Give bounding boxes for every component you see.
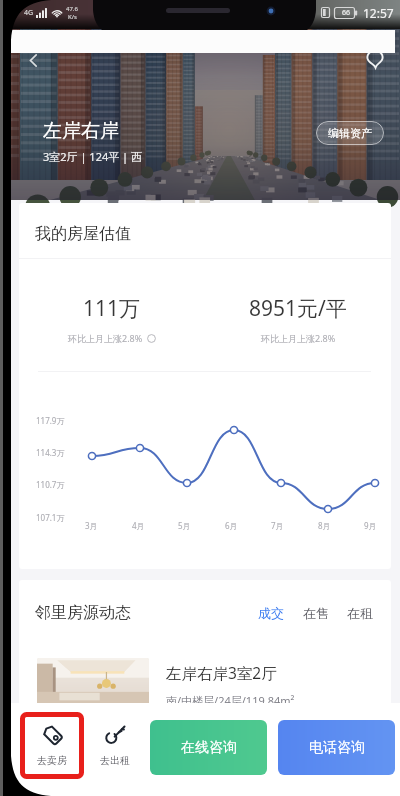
staticText: 107.1万 — [36, 512, 65, 523]
staticText: 电话咨询 — [309, 739, 365, 757]
staticText: 4月 — [132, 520, 145, 531]
staticText: 环比上月上涨2.8% — [68, 332, 143, 344]
button[interactable]: 客服 — [360, 44, 390, 74]
button[interactable]: 电话咨询 — [278, 720, 395, 775]
staticText: 环比上月上涨2.8% — [261, 332, 336, 344]
staticText: 我的房屋估值 — [35, 224, 131, 244]
staticText: 5月 — [178, 520, 191, 531]
button[interactable]: 在线咨询 — [150, 720, 267, 775]
staticText: 左岸右岸 — [43, 119, 119, 143]
staticText: 8月 — [318, 520, 331, 531]
button[interactable]: 编辑资产 — [316, 121, 384, 145]
staticText: 8951元/平 — [249, 294, 347, 323]
staticText: 117.9万 — [36, 415, 65, 426]
staticText: 9月 — [364, 520, 377, 531]
staticText: 成交 — [258, 605, 284, 621]
staticText: 在线咨询 — [181, 739, 237, 757]
staticText: 左岸右岸3室2厅 — [166, 662, 277, 683]
button[interactable]: 在售 — [300, 601, 332, 625]
staticText: 邻里房源动态 — [35, 603, 131, 623]
staticText: 在租 — [347, 605, 373, 621]
staticText: 12:57 — [363, 5, 394, 21]
button[interactable]: 去卖房 — [20, 712, 84, 779]
staticText: K/s — [68, 13, 77, 21]
staticText: 7月 — [271, 520, 284, 531]
staticText: 4G — [24, 8, 34, 18]
button[interactable]: 返回 — [17, 44, 49, 76]
button[interactable]: 去出租 — [84, 712, 146, 779]
staticText: 3室2厅 | 124平 | 西 — [43, 149, 143, 164]
staticText: 3月 — [85, 520, 98, 531]
staticText: 66 — [342, 8, 351, 18]
staticText: 6月 — [225, 520, 238, 531]
staticText: 去出租 — [100, 754, 130, 767]
button[interactable]: 在租 — [344, 601, 376, 625]
staticText: 47.6 — [66, 5, 78, 13]
staticText: 编辑资产 — [328, 126, 372, 140]
staticText: 去卖房 — [37, 754, 67, 767]
button[interactable]: 左岸右岸3室2厅 — [19, 580, 391, 705]
staticText: 114.3万 — [36, 447, 65, 458]
staticText: 在售 — [303, 605, 329, 621]
staticText: 111万 — [83, 294, 141, 323]
staticText: 南/中楼层/24层/119.84m² — [166, 693, 295, 705]
button[interactable]: 成交 — [255, 601, 287, 625]
staticText: 110.7万 — [36, 479, 65, 490]
